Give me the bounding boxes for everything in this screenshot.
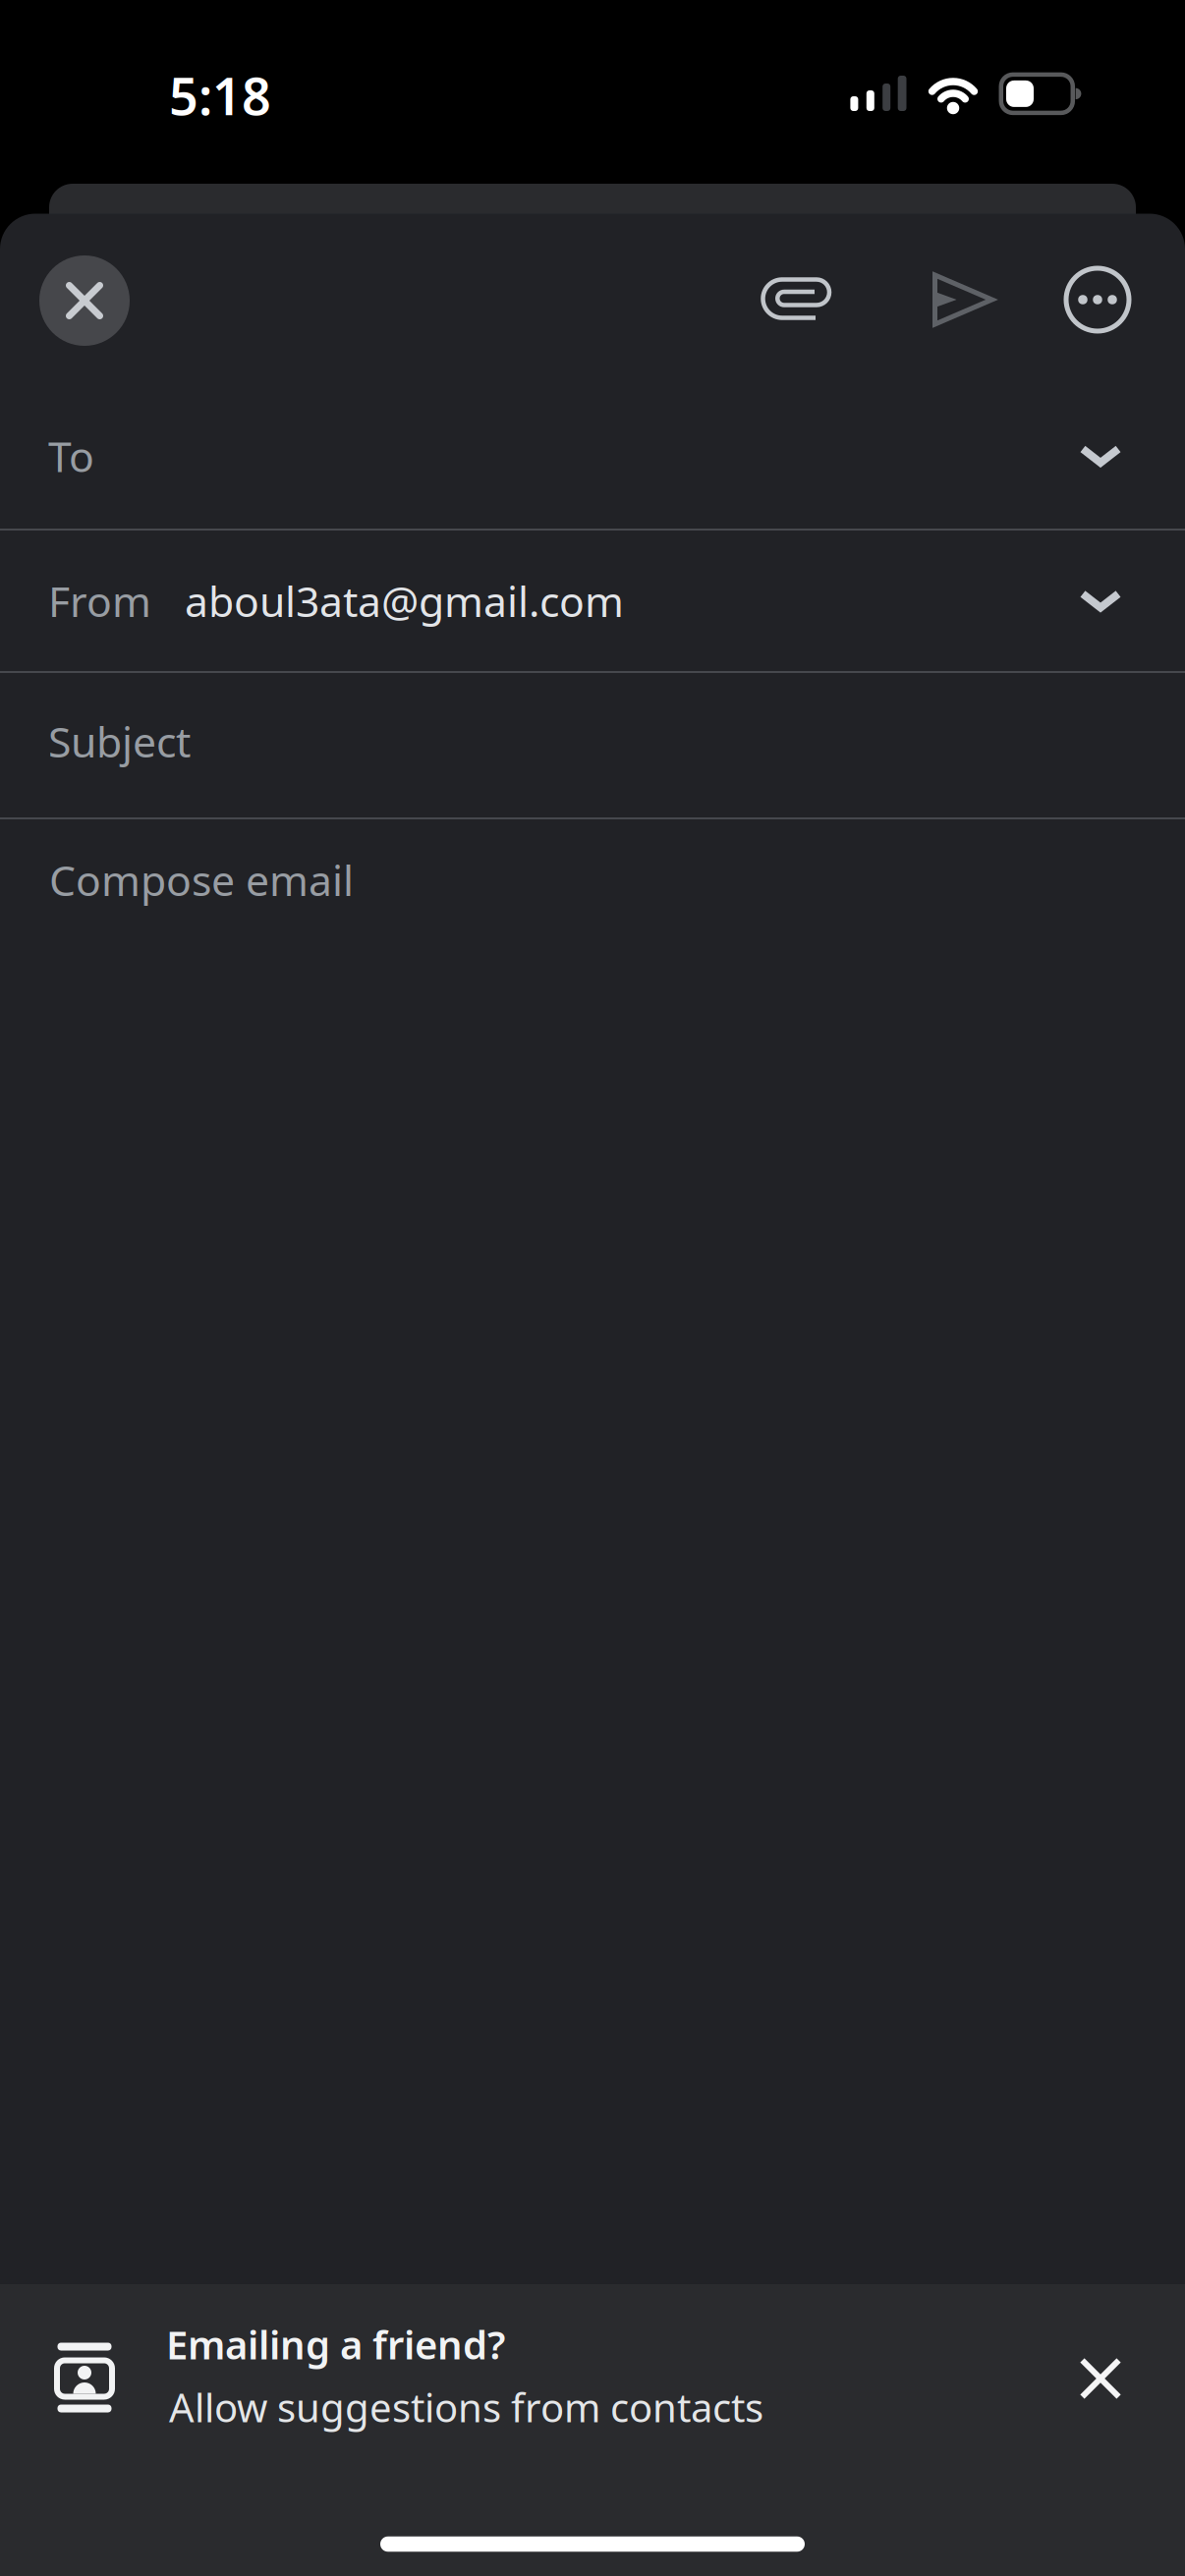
staticText: Emailing a friend? xyxy=(166,2318,505,2370)
staticText: To xyxy=(48,428,94,484)
button[interactable]: Close xyxy=(39,255,130,346)
button[interactable]: Subject xyxy=(0,668,1185,814)
staticText: Allow suggestions from contacts xyxy=(169,2381,763,2433)
staticText: From xyxy=(48,573,151,629)
button[interactable]: Dismiss xyxy=(1056,2334,1145,2423)
staticText: Subject xyxy=(48,713,191,769)
button[interactable]: From aboul3ata@gmail.com xyxy=(0,530,1185,672)
staticText: Compose email xyxy=(49,852,354,907)
button[interactable]: More options xyxy=(1048,251,1147,349)
staticText: 5:18 xyxy=(169,61,271,129)
staticText: aboul3ata@gmail.com xyxy=(185,573,624,629)
button[interactable]: Compose email xyxy=(0,818,1185,2282)
button[interactable]: Attach file xyxy=(747,250,845,348)
button[interactable]: Send xyxy=(914,251,1013,349)
button[interactable]: To xyxy=(0,382,1185,530)
